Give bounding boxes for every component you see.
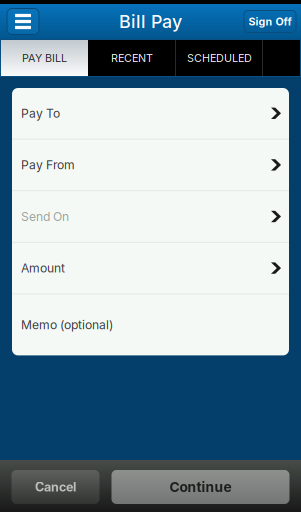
button[interactable]: Sign Off xyxy=(244,10,296,32)
button[interactable]: Pay To xyxy=(12,88,289,139)
staticText: RECENT xyxy=(111,51,153,65)
staticText: Pay To xyxy=(21,106,60,121)
staticText: Bill Pay xyxy=(119,11,182,32)
staticText: Sign Off xyxy=(248,15,291,28)
staticText: Send On xyxy=(21,209,69,224)
button[interactable]: Memo (optional) xyxy=(12,294,289,355)
button[interactable]: Menu xyxy=(7,8,39,34)
staticText: PAY BILL xyxy=(22,51,67,65)
button[interactable]: SCHEDULED xyxy=(176,40,263,76)
staticText: Amount xyxy=(21,261,65,275)
button[interactable]: Pay From xyxy=(12,140,289,190)
button[interactable]: Send On xyxy=(12,191,289,242)
button[interactable]: Continue xyxy=(111,470,289,504)
button[interactable]: RECENT xyxy=(88,40,176,76)
staticText: SCHEDULED xyxy=(187,51,252,65)
staticText: Memo (optional) xyxy=(21,318,113,332)
button[interactable]: Cancel xyxy=(11,470,99,504)
button[interactable]: PAY BILL xyxy=(1,40,88,76)
staticText: Continue xyxy=(169,479,231,495)
staticText: Pay From xyxy=(21,158,75,172)
staticText: Cancel xyxy=(35,479,76,495)
button[interactable]: Amount xyxy=(12,243,289,293)
